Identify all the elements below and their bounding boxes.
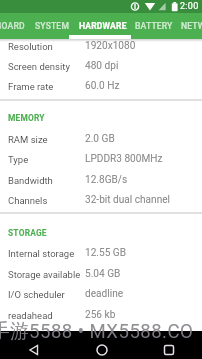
staticText: 12.55 GB <box>85 247 127 259</box>
staticText: 480 dpi <box>85 60 119 72</box>
staticText: Resolution <box>8 41 53 52</box>
button[interactable]: HARDWARE <box>79 13 127 39</box>
staticText: MEMORY <box>8 113 45 123</box>
staticText: NETWORK <box>181 21 202 31</box>
staticText: SYSTEM <box>35 21 70 31</box>
staticText: 2:00 <box>180 1 199 12</box>
button[interactable]: BOARD <box>0 13 25 39</box>
staticText: 60.0 Hz <box>85 80 120 92</box>
staticText: 32-bit dual channel <box>85 194 171 206</box>
staticText: Channels <box>8 195 48 206</box>
staticText: RAM size <box>8 134 48 145</box>
staticText: 1920x1080 <box>85 40 136 52</box>
staticText: HARDWARE <box>79 21 127 31</box>
staticText: Screen density <box>8 61 70 72</box>
staticText: BOARD <box>0 21 25 31</box>
staticText: Bandwidth <box>8 175 53 186</box>
button[interactable]: BATTERY <box>135 13 173 39</box>
staticText: LPDDR3 800MHz <box>85 153 163 165</box>
staticText: readahead <box>8 310 53 321</box>
staticText: Type <box>8 154 29 165</box>
staticText: 2.0 GB <box>85 133 115 145</box>
button[interactable]: NETWORK <box>181 13 202 39</box>
staticText: BATTERY <box>135 21 173 31</box>
staticText: I/O scheduler <box>8 289 65 300</box>
button[interactable]: SYSTEM <box>35 13 70 39</box>
staticText: 5.04 GB <box>85 268 121 280</box>
staticText: 手游5588 • MX5588.COM <box>0 331 193 343</box>
staticText: STORAGE <box>8 228 47 238</box>
staticText: 12.8GB/s <box>85 174 128 186</box>
button[interactable] <box>135 340 202 359</box>
staticText: 256 kb <box>85 309 116 321</box>
button[interactable] <box>68 340 135 359</box>
staticText: deadline <box>85 288 124 300</box>
button[interactable] <box>0 340 68 359</box>
staticText: 手游5588 • MX5588.COM <box>0 319 193 342</box>
staticText: Internal storage <box>8 248 75 259</box>
staticText: Storage available <box>8 269 81 280</box>
staticText: Frame rate <box>8 81 54 92</box>
